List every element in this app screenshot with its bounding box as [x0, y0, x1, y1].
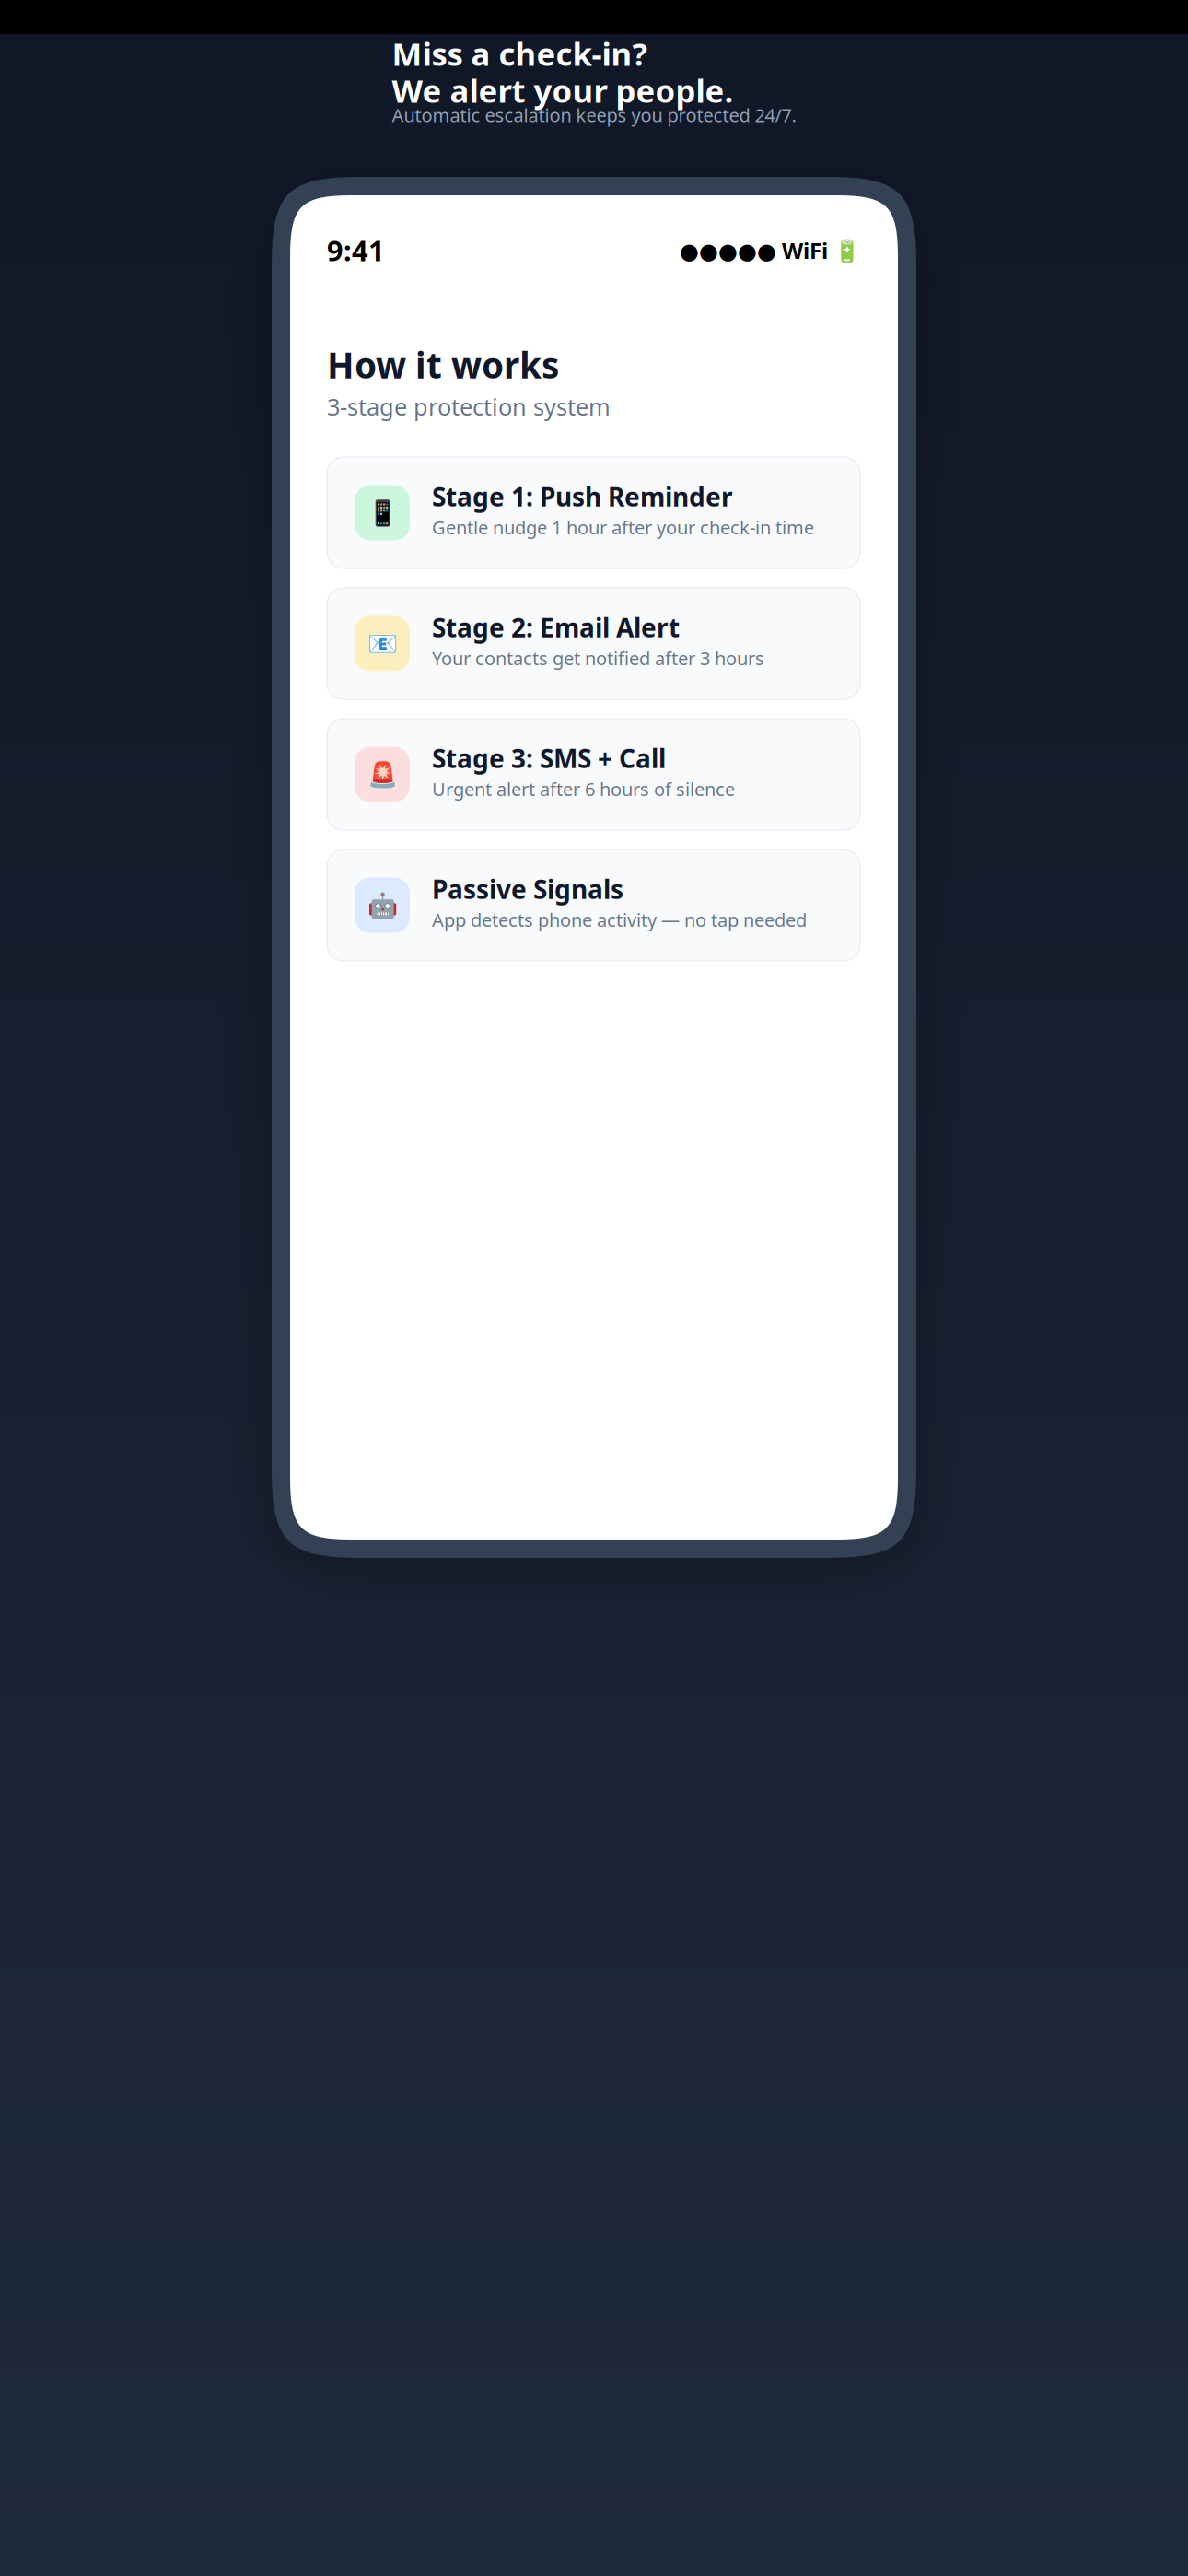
staticText: Stage 2: Email Alert: [432, 610, 680, 644]
staticText: Urgent alert after 6 hours of silence: [432, 777, 735, 801]
staticText: 🤖: [367, 891, 397, 919]
staticText: How it works: [327, 341, 559, 388]
staticText: 9:41: [327, 232, 385, 269]
staticText: Stage 3: SMS + Call: [432, 741, 666, 775]
staticText: Stage 1: Push Reminder: [432, 479, 733, 514]
staticText: We alert your people.: [392, 69, 734, 111]
button[interactable]: Stage 1: Push Reminder. Gentle nudge 1 h…: [327, 457, 860, 568]
staticText: 📱: [367, 499, 397, 527]
staticText: Gentle nudge 1 hour after your check-in …: [432, 515, 814, 539]
staticText: App detects phone activity — no tap need…: [432, 907, 807, 932]
staticText: Your contacts get notified after 3 hours: [432, 646, 764, 670]
staticText: Miss a check-in?: [392, 32, 648, 75]
button[interactable]: Passive Signals. App detects phone activ…: [327, 849, 860, 961]
staticText: 📧: [367, 630, 397, 658]
staticText: Passive Signals: [432, 872, 623, 906]
button[interactable]: Stage 3: SMS + Call. Urgent alert after …: [327, 719, 860, 830]
staticText: 🚨: [367, 760, 397, 788]
staticText: Automatic escalation keeps you protected…: [392, 103, 796, 127]
button[interactable]: Stage 2: Email Alert. Your contacts get …: [327, 588, 860, 699]
staticText: 3-stage protection system: [327, 391, 611, 422]
staticText: ●●●●● WiFi 🔋: [680, 236, 861, 265]
